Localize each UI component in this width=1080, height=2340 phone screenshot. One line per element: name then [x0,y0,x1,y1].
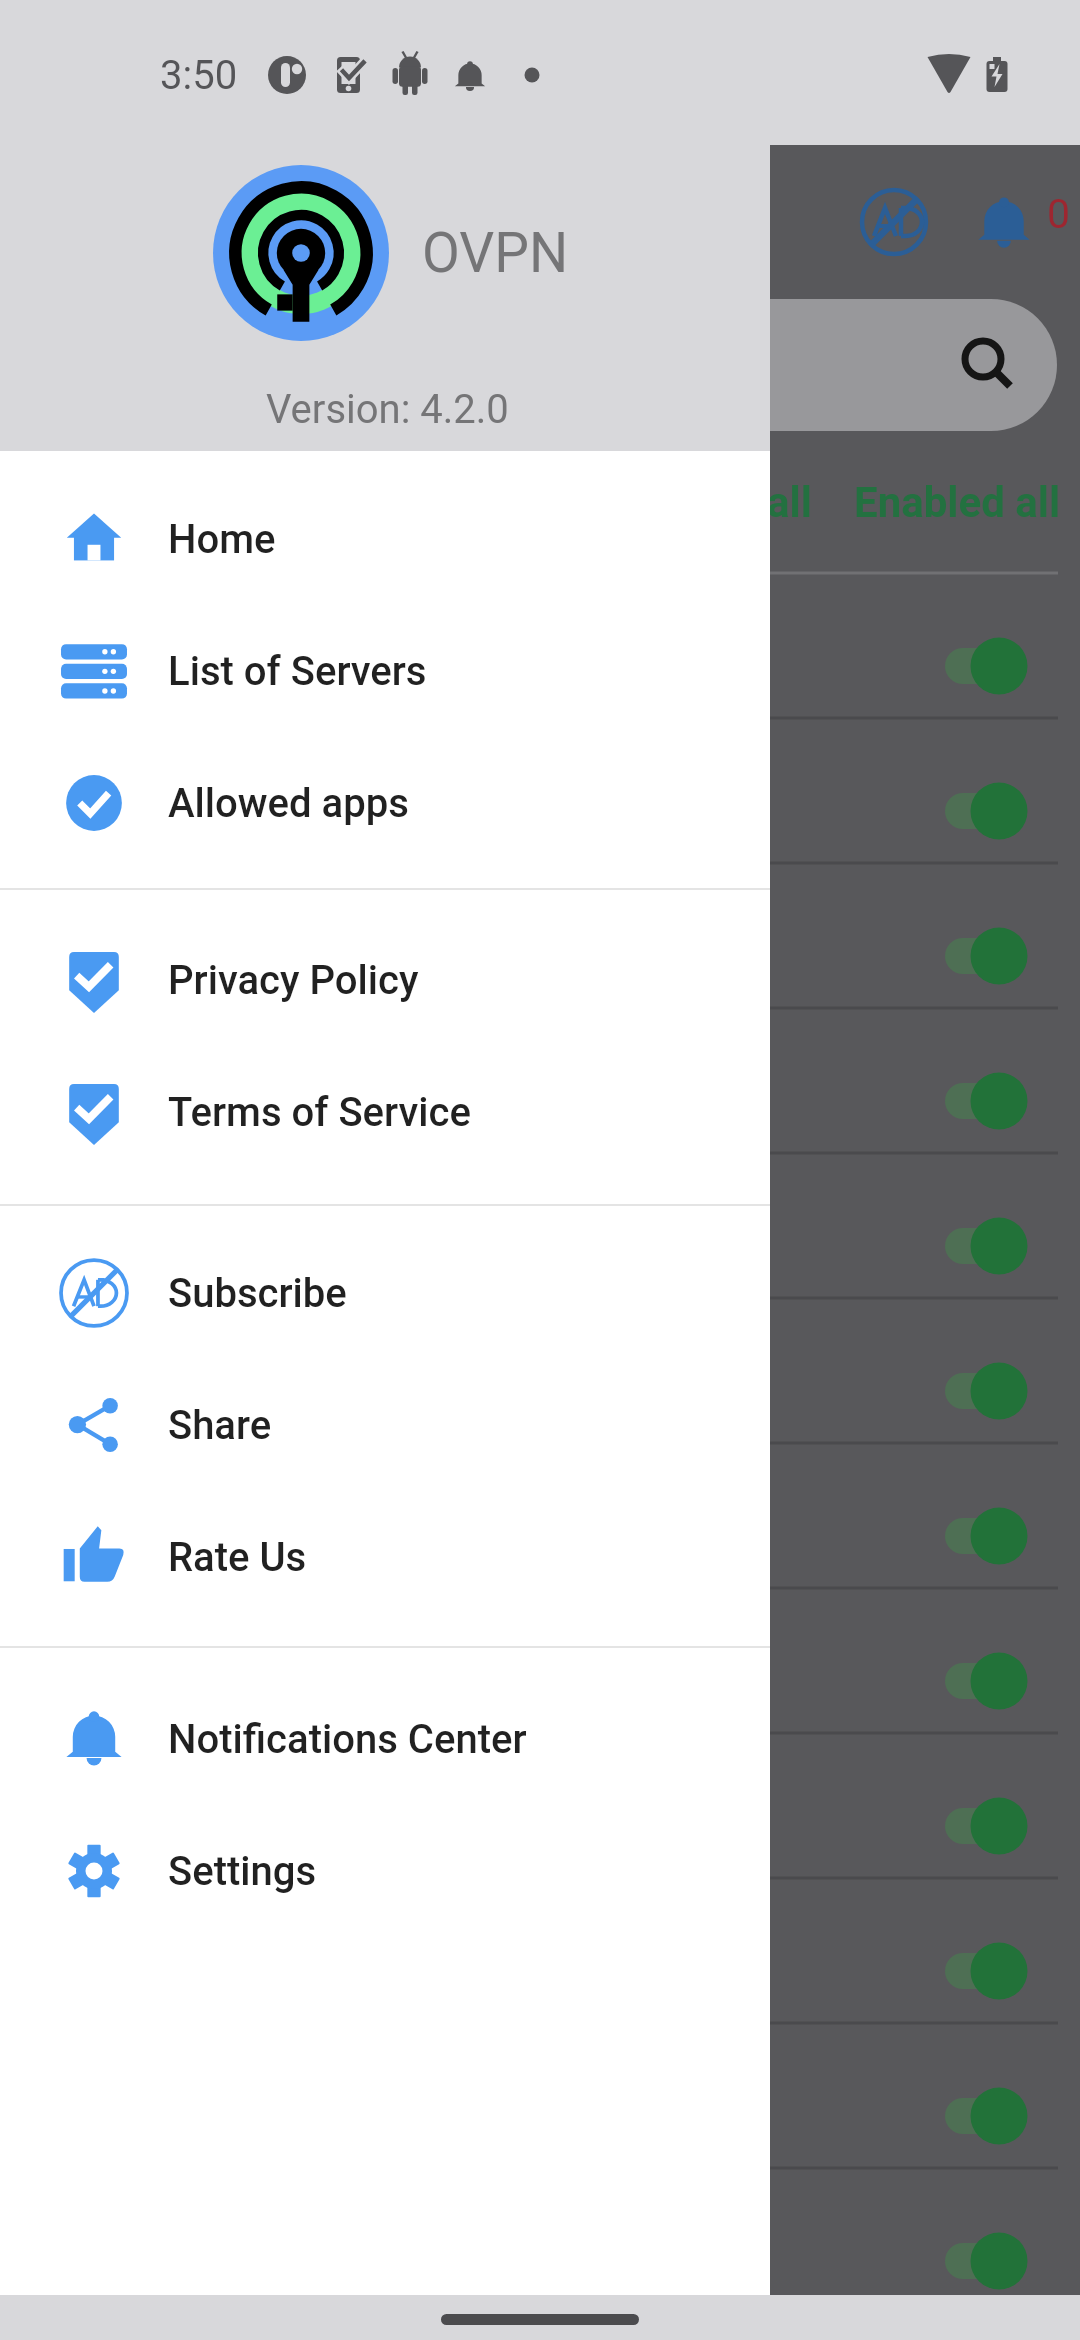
staticText: 3:50 [160,52,238,99]
staticText: Subscribe [168,1270,347,1317]
staticText: Privacy Policy [168,957,419,1004]
staticText: List of Servers [168,648,427,695]
button[interactable]: Notifications Center [0,1673,770,1805]
button[interactable]: Allowed apps [0,737,770,869]
staticText: 0 [1047,190,1071,238]
button[interactable]: List of Servers [0,605,770,737]
staticText: Home [168,516,276,563]
button[interactable]: Remove ads [858,186,930,258]
staticText: Share [168,1402,272,1449]
staticText: Rate Us [168,1534,307,1581]
button[interactable]: Home [0,473,770,605]
staticText: Terms of Service [168,1089,471,1136]
staticText: Allowed apps [168,780,409,827]
button[interactable]: Share [0,1359,770,1491]
button[interactable]: Subscribe [0,1227,770,1359]
button[interactable]: Privacy Policy [0,914,770,1046]
button[interactable]: Rate Us [0,1491,770,1623]
button[interactable]: Search [770,299,1057,431]
staticText: Notifications Center [168,1716,527,1763]
staticText: all [767,478,887,527]
staticText: Version: 4.2.0 [266,386,509,433]
staticText: OVPN [422,221,569,285]
button[interactable]: Terms of Service [0,1046,770,1178]
button[interactable]: Settings [0,1805,770,1937]
staticText: Enabled all [854,478,1080,527]
button[interactable]: Notifications [968,186,1040,258]
staticText: Settings [168,1848,317,1895]
